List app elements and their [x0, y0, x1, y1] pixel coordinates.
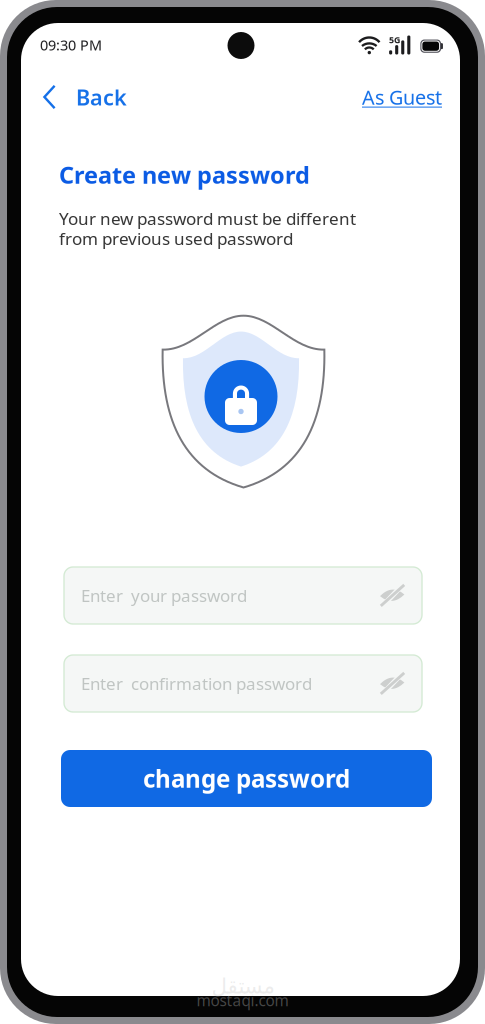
staticText: 09:30 PM	[40, 35, 102, 54]
staticText: مستقل	[211, 974, 274, 998]
staticText: Enter confirmation password	[81, 672, 312, 695]
staticText: Back	[76, 83, 127, 111]
staticText: change password	[143, 762, 350, 794]
staticText: Your new password must be different	[59, 207, 356, 230]
staticText: As Guest	[362, 84, 442, 110]
staticText: Enter your password	[81, 584, 247, 607]
staticText: Create new password	[59, 159, 310, 190]
button[interactable]: change password	[61, 750, 432, 807]
button[interactable]: Enter confirmation password	[64, 655, 422, 712]
staticText: from previous used password	[59, 227, 293, 250]
staticText: mostaqi.com	[196, 990, 288, 1010]
button[interactable]: Enter your password	[64, 567, 422, 624]
staticText: 5G	[389, 34, 400, 46]
button[interactable]: Back	[37, 75, 133, 119]
button[interactable]: As Guest	[358, 76, 446, 118]
